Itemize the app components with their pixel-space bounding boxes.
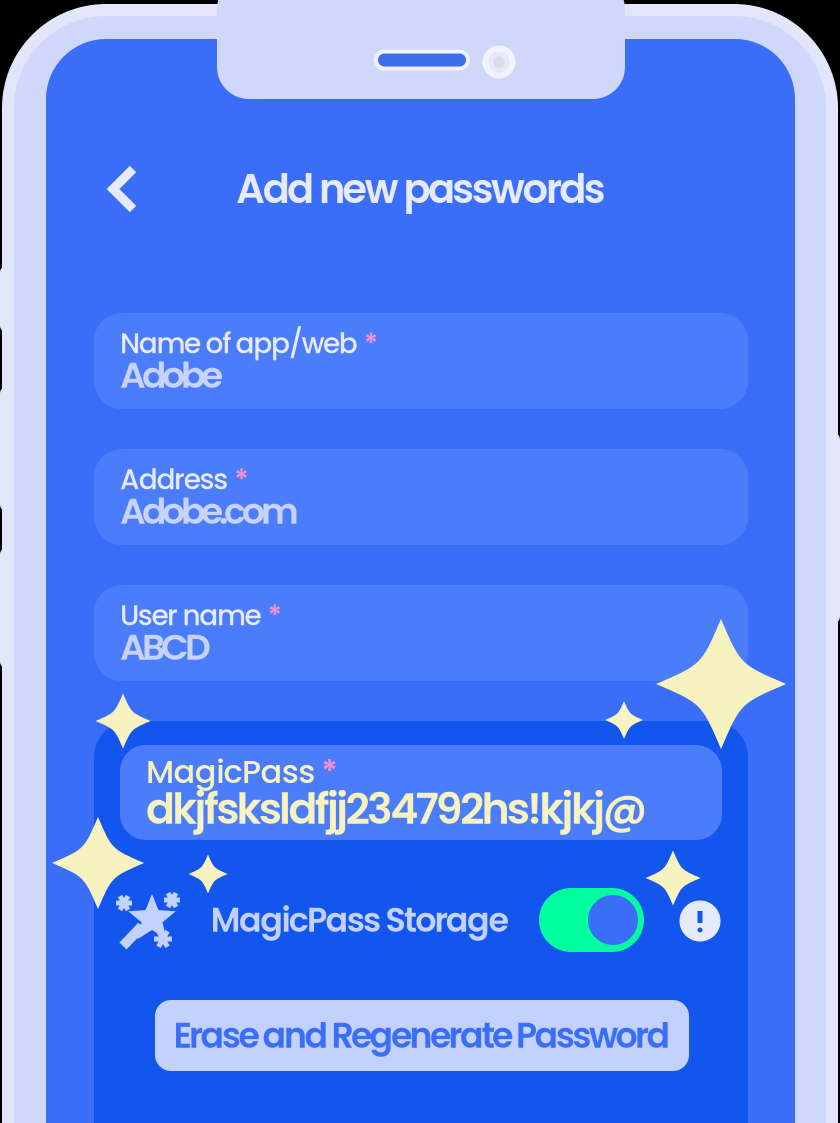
staticText: Adobe.com	[120, 486, 299, 536]
button[interactable]: Back	[88, 154, 158, 224]
staticText: *	[234, 460, 249, 499]
staticText: dkjfsksldfjj234792hs!kjkj@	[146, 779, 647, 838]
staticText: Address	[120, 460, 228, 499]
staticText: MagicPass	[146, 749, 315, 794]
staticText: MagicPass Storage	[211, 897, 509, 943]
button[interactable]: Info	[679, 900, 720, 941]
staticText: Add new passwords	[236, 161, 606, 217]
staticText: ABCD	[120, 622, 211, 672]
staticText: Erase and Regenerate Password	[173, 1011, 670, 1060]
staticText: *	[268, 596, 283, 635]
button[interactable]: Erase and Regenerate Password	[155, 1000, 689, 1071]
button[interactable]: MagicPass Storage	[539, 888, 644, 952]
staticText: *	[364, 324, 379, 363]
staticText: Name of app/web	[120, 324, 358, 363]
staticText: *	[321, 749, 338, 794]
staticText: Adobe	[120, 350, 223, 400]
staticText: User name	[120, 596, 262, 635]
